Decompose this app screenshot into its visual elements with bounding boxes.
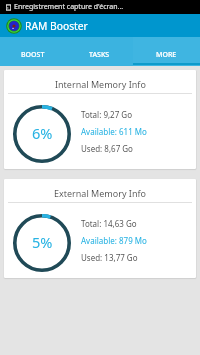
staticText: Total: 9,27 Go bbox=[81, 109, 133, 120]
staticText: BOOST bbox=[21, 50, 45, 60]
staticText: External Memory Info bbox=[54, 187, 146, 199]
button[interactable]: External Memory Info bbox=[4, 179, 196, 278]
button[interactable]: Internal Memory Info bbox=[4, 70, 196, 169]
staticText: Available: 611 Mo bbox=[81, 126, 147, 137]
staticText: Available: 879 Mo bbox=[81, 235, 147, 246]
staticText: TASKS bbox=[89, 50, 110, 60]
button[interactable]: BOOST bbox=[0, 37, 66, 66]
staticText: Used: 13,77 Go bbox=[81, 252, 138, 263]
staticText: MORE bbox=[156, 50, 177, 60]
staticText: Used: 8,67 Go bbox=[81, 143, 133, 154]
staticText: Internal Memory Info bbox=[55, 78, 146, 90]
staticText: 5% bbox=[32, 232, 53, 252]
staticText: Total: 14,63 Go bbox=[81, 218, 137, 229]
staticText: RAM Booster bbox=[25, 19, 88, 33]
button[interactable]: TASKS bbox=[66, 37, 133, 66]
staticText: Enregistrement capture d'écran... bbox=[14, 2, 124, 12]
staticText: 6% bbox=[32, 123, 53, 143]
button[interactable]: MORE bbox=[133, 37, 200, 66]
